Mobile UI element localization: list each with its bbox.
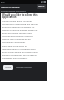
staticText: Lorem ipsum dolor sit amet consectetur a… <box>2 20 38 44</box>
staticText: Agree <box>5 66 11 69</box>
staticText: Terms of Service <box>1 5 20 8</box>
staticText: policies.google.com/terms <box>1 10 26 13</box>
staticText: Sign in <box>38 5 45 8</box>
staticText: Would you like to allow this application <box>2 13 38 19</box>
button[interactable]: Agree <box>3 65 13 70</box>
staticText: 9:41 <box>1 1 5 3</box>
staticText: Duis aute irure dolor in reprehenderit i… <box>2 45 38 60</box>
staticText: Manage settings <box>16 66 32 69</box>
button[interactable]: Sign in <box>37 4 46 9</box>
